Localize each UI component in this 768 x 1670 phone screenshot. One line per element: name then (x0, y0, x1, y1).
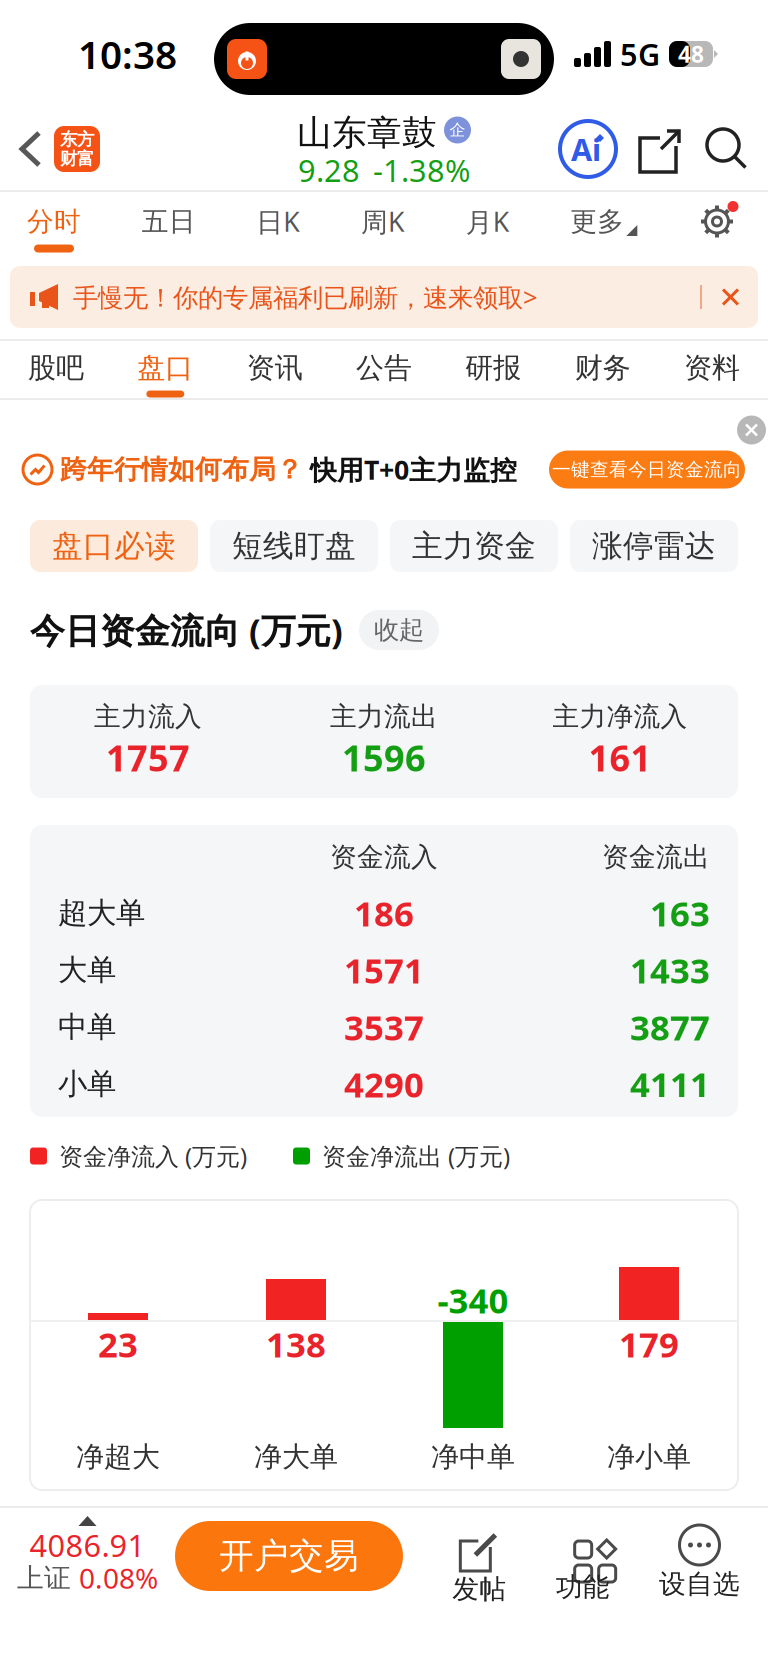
button[interactable]: 东方财富 (54, 126, 100, 172)
button[interactable]: 关闭 (737, 413, 768, 444)
button[interactable]: 日K (256, 204, 300, 252)
button[interactable]: 周K (361, 204, 405, 252)
button[interactable]: 涨停雷达 (570, 520, 738, 572)
staticText: 资讯 (247, 351, 303, 385)
button[interactable]: 研报 (465, 350, 521, 397)
staticText: 161 (588, 734, 651, 781)
staticText: 1433 (630, 947, 710, 993)
staticText: 1757 (106, 734, 190, 781)
staticText: 23 (98, 1321, 138, 1367)
staticText: 公告 (356, 351, 412, 385)
button[interactable]: 更多 (570, 204, 637, 252)
staticText: 手慢无！你的专属福利已刷新，速来领取> (73, 280, 537, 314)
button[interactable]: 设置 (698, 202, 736, 254)
staticText: 股吧 (28, 351, 84, 385)
staticText: 净大单 (254, 1440, 338, 1474)
button[interactable]: 月K (466, 204, 510, 252)
staticText: 快用T+0主力监控 (310, 452, 517, 487)
staticText: 4290 (344, 1061, 424, 1107)
staticText: 涨停雷达 (592, 527, 716, 565)
button[interactable]: 盘口 (137, 350, 193, 397)
staticText: 资金流入 (330, 841, 438, 873)
staticText: 4086.91 (29, 1525, 145, 1565)
staticText: 3537 (344, 1004, 424, 1050)
staticText: 1596 (342, 734, 426, 781)
staticText: 跨年行情如何布局？ (60, 453, 303, 486)
staticText: 1571 (344, 947, 424, 993)
staticText: 9.28 (298, 150, 360, 190)
staticText: 发帖 (452, 1573, 506, 1605)
staticText: 今日资金流向 (万元) (30, 607, 343, 653)
staticText: 净中单 (431, 1440, 515, 1474)
staticText: 163 (650, 890, 710, 936)
button[interactable]: 发帖 (452, 1516, 506, 1603)
staticText: 开户交易 (219, 1535, 359, 1577)
staticText: 月K (466, 204, 510, 239)
staticText: 财务 (575, 351, 631, 385)
staticText: 短线盯盘 (232, 527, 356, 565)
button[interactable]: Ai 助手 (560, 121, 616, 177)
staticText: 主力净流入 (552, 700, 687, 733)
staticText: 主力流入 (94, 700, 202, 733)
staticText: 资料 (684, 351, 740, 385)
staticText: 5G (620, 34, 660, 74)
button[interactable]: 盘口必读 (30, 520, 198, 572)
staticText: 净小单 (607, 1440, 691, 1474)
button[interactable]: 关闭横幅 (715, 289, 738, 304)
staticText: 一键查看今日资金流向 (552, 458, 742, 481)
button[interactable]: 资料 (684, 350, 740, 397)
staticText: 主力资金 (412, 527, 536, 565)
staticText: 收起 (374, 614, 424, 645)
staticText: 周K (361, 204, 405, 239)
staticText: 山东章鼓 (297, 112, 437, 154)
staticText: 138 (266, 1321, 326, 1367)
staticText: 大单 (58, 952, 116, 988)
button[interactable]: 返回 (0, 133, 54, 165)
button[interactable]: 开户交易 (175, 1516, 403, 1591)
staticText: 日K (256, 204, 300, 239)
staticText: 企 (449, 120, 465, 140)
staticText: 上证 (17, 1562, 71, 1594)
staticText: 五日 (142, 205, 196, 238)
staticText: 179 (619, 1321, 679, 1367)
button[interactable]: 手慢无！你的专属福利已刷新，速来领取> (0, 266, 768, 328)
staticText: -1.38% (373, 150, 470, 190)
staticText: 财富 (60, 148, 94, 169)
staticText: 中单 (58, 1009, 116, 1045)
staticText: 资金净流入 (万元) (59, 1140, 247, 1172)
staticText: 更多 (570, 205, 624, 238)
staticText: 10:38 (78, 28, 177, 80)
staticText: 0.08% (79, 1559, 158, 1597)
button[interactable]: 分享 (639, 127, 683, 171)
staticText: 主力流出 (330, 700, 438, 733)
button[interactable]: 一键查看今日资金流向 (549, 450, 745, 488)
staticText: 东方 (60, 129, 94, 150)
button[interactable]: 功能 (556, 1516, 610, 1601)
staticText: 小单 (58, 1066, 116, 1102)
button[interactable]: 财务 (575, 350, 631, 397)
button[interactable]: 资讯 (247, 350, 303, 397)
staticText: -340 (437, 1277, 508, 1323)
button[interactable]: 设自选 (659, 1516, 740, 1598)
button[interactable]: 短线盯盘 (210, 520, 378, 572)
staticText: 分时 (27, 205, 81, 238)
staticText: 3877 (630, 1004, 710, 1050)
staticText: 186 (354, 890, 414, 936)
button[interactable]: 搜索 (706, 128, 748, 170)
button[interactable]: 五日 (142, 204, 196, 252)
staticText: 功能 (556, 1571, 610, 1603)
staticText: 盘口必读 (52, 527, 176, 565)
staticText: 设自选 (659, 1568, 740, 1600)
button[interactable]: 股吧 (28, 350, 84, 397)
staticText: 研报 (465, 351, 521, 385)
staticText: 超大单 (58, 895, 145, 931)
staticText: 净超大 (76, 1440, 160, 1474)
staticText: 盘口 (137, 351, 193, 385)
button[interactable]: 主力资金 (390, 520, 558, 572)
staticText: Ai (571, 129, 601, 169)
button[interactable]: 收起 (359, 610, 439, 650)
button[interactable]: 4086.91 (0, 1516, 175, 1592)
button[interactable]: 分时 (27, 204, 81, 252)
button[interactable]: 公告 (356, 350, 412, 397)
staticText: 资金流出 (602, 841, 710, 873)
